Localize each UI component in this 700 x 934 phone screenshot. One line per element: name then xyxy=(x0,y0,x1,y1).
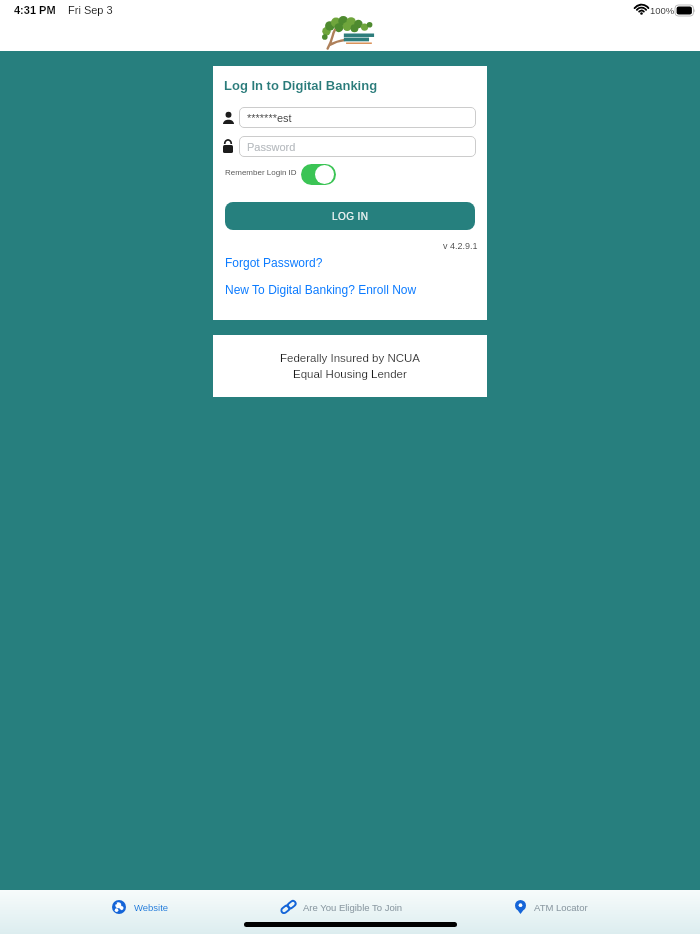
button[interactable]: New To Digital Banking? Enroll Now xyxy=(225,283,417,296)
staticText: Forgot Password? xyxy=(225,256,323,269)
staticText: Log In to Digital Banking xyxy=(224,78,378,93)
button[interactable]: LOG IN xyxy=(225,202,475,230)
staticText: Fri Sep 3 xyxy=(68,4,113,16)
button[interactable]: Forgot Password? xyxy=(225,256,323,269)
staticText: ATM Locator xyxy=(534,902,588,913)
button[interactable]: Website xyxy=(112,890,169,924)
button[interactable] xyxy=(301,164,336,185)
button[interactable]: Password xyxy=(239,136,476,157)
staticText: Equal Housing Lender xyxy=(293,368,407,381)
staticText: 4:31 PM xyxy=(14,4,56,16)
button[interactable]: Are You Eligible To Join xyxy=(281,890,403,924)
staticText: Are You Eligible To Join xyxy=(303,902,403,913)
staticText: New To Digital Banking? Enroll Now xyxy=(225,283,417,296)
staticText: 100% xyxy=(650,5,675,16)
button[interactable]: ATM Locator xyxy=(515,890,588,924)
staticText: Password xyxy=(247,141,296,153)
button[interactable]: *******est xyxy=(239,107,476,128)
staticText: Federally Insured by NCUA xyxy=(280,352,420,365)
staticText: LOG IN xyxy=(332,211,369,222)
staticText: *******est xyxy=(247,112,292,124)
staticText: v 4.2.9.1 xyxy=(443,241,478,251)
staticText: Website xyxy=(134,902,169,913)
staticText: Remember Login ID xyxy=(225,168,297,177)
